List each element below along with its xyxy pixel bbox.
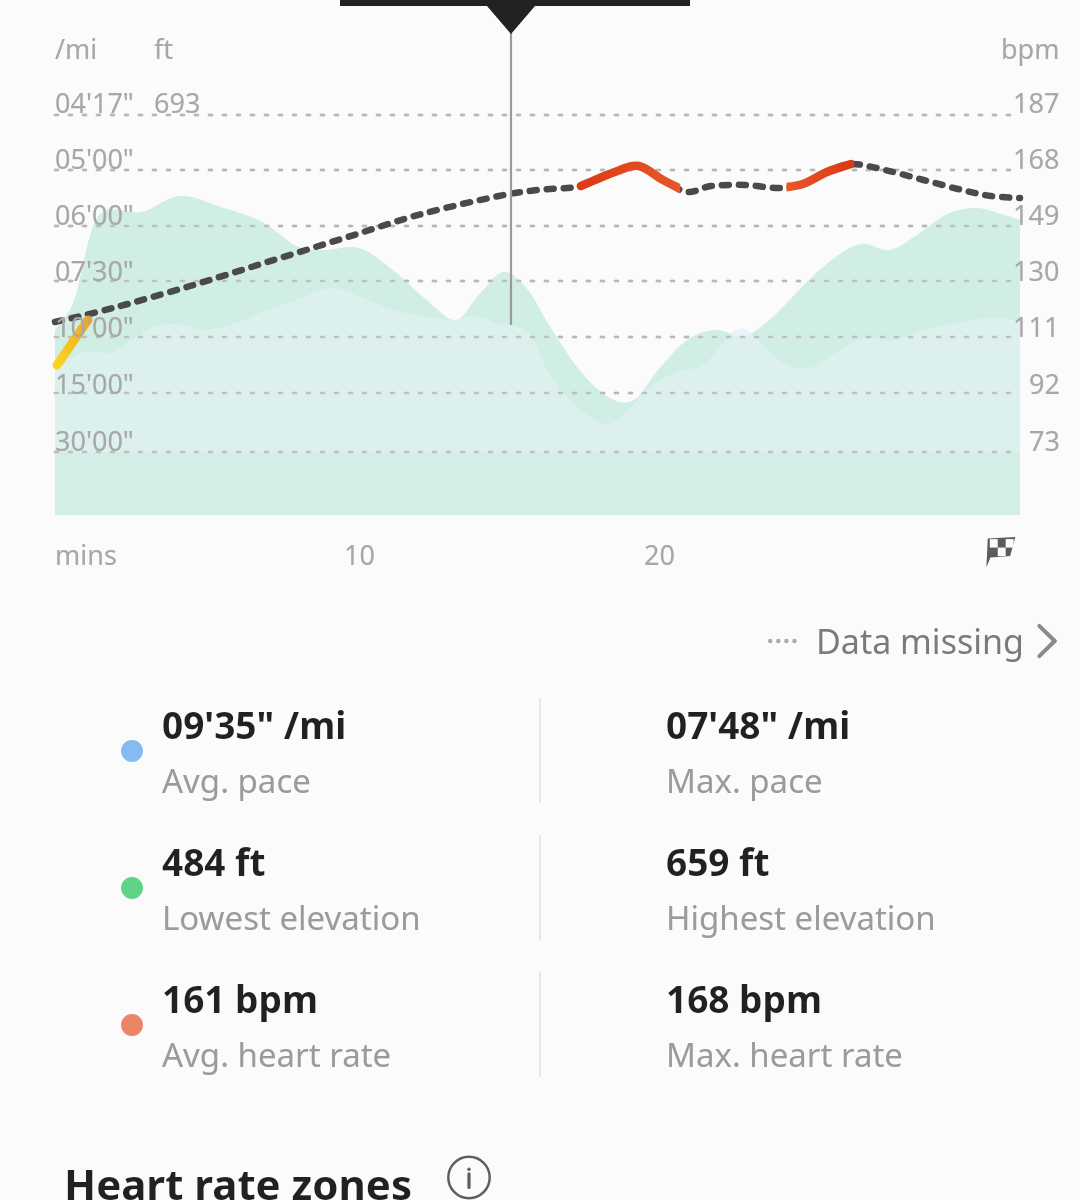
staticText: 30'00" (55, 422, 134, 459)
staticText: 04'17" (55, 84, 134, 121)
staticText: 187 (1013, 84, 1060, 121)
staticText: 92 (1029, 365, 1060, 402)
staticText: 07'48" /mi (666, 699, 851, 749)
staticText: mins (55, 536, 117, 573)
button[interactable]: 09'35" /mi (0, 682, 539, 819)
staticText: 05'00" (55, 140, 134, 177)
staticText: 06'00" (55, 196, 134, 233)
staticText: Lowest elevation (162, 895, 421, 940)
staticText: Data missing (816, 618, 1024, 664)
button[interactable]: 168 bpm (541, 956, 1080, 1093)
button[interactable]: 484 ft (0, 819, 539, 956)
staticText: 659 ft (666, 836, 770, 886)
staticText: Highest elevation (666, 895, 936, 940)
staticText: ft (154, 30, 174, 67)
button[interactable]: 161 bpm (0, 956, 539, 1093)
staticText: 168 (1013, 140, 1060, 177)
staticText: Avg. heart rate (162, 1032, 392, 1077)
staticText: 10 (344, 536, 375, 573)
staticText: 149 (1013, 196, 1060, 233)
staticText: /mi (55, 30, 98, 67)
staticText: Max. heart rate (666, 1032, 903, 1077)
staticText: bpm (1001, 30, 1060, 67)
staticText: 20 (644, 536, 675, 573)
staticText: 10'00" (55, 308, 134, 345)
staticText: 07'30" (55, 252, 134, 289)
button[interactable]: Info about heart rate zones (441, 1155, 497, 1200)
staticText: 161 bpm (162, 973, 318, 1023)
staticText: 73 (1029, 422, 1060, 459)
staticText: 168 bpm (666, 973, 822, 1023)
staticText: 111 (1013, 308, 1060, 345)
staticText: Avg. pace (162, 758, 311, 803)
staticText: 15'00" (55, 365, 134, 402)
button[interactable]: 659 ft (541, 819, 1080, 956)
staticText: 09'35" /mi (162, 699, 347, 749)
staticText: Heart rate zones (64, 1155, 413, 1200)
button[interactable]: Data missing (0, 618, 1080, 664)
staticText: 484 ft (162, 836, 266, 886)
staticText: Max. pace (666, 758, 823, 803)
staticText: 130 (1013, 252, 1060, 289)
button[interactable]: 07'48" /mi (541, 682, 1080, 819)
button[interactable]: Finish (978, 530, 1022, 574)
staticText: 693 (154, 84, 201, 121)
